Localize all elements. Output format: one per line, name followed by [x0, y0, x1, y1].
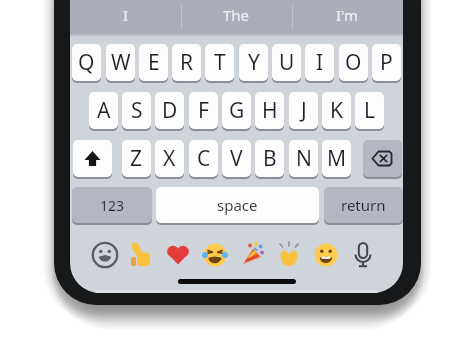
- button[interactable]: D: [155, 92, 184, 129]
- button[interactable]: J: [289, 92, 318, 129]
- staticText: H: [262, 96, 278, 125]
- staticText: W: [111, 48, 131, 77]
- button[interactable]: W: [106, 44, 135, 81]
- button[interactable]: P: [372, 44, 401, 81]
- button[interactable]: F: [189, 92, 218, 129]
- staticText: S: [131, 96, 143, 125]
- staticText: D: [162, 96, 178, 125]
- button[interactable]: V: [222, 140, 251, 177]
- button[interactable]: C: [189, 140, 218, 177]
- button[interactable]: S: [122, 92, 151, 129]
- staticText: V: [230, 144, 243, 173]
- staticText: E: [148, 48, 160, 77]
- button[interactable]: return: [324, 187, 403, 223]
- button[interactable]: O: [339, 44, 368, 81]
- staticText: G: [229, 96, 245, 125]
- staticText: M: [327, 144, 347, 173]
- staticText: R: [180, 48, 194, 77]
- button[interactable]: H: [255, 92, 284, 129]
- button[interactable]: [90, 240, 120, 270]
- staticText: B: [263, 144, 277, 173]
- staticText: I: [123, 5, 129, 25]
- button[interactable]: Y: [239, 44, 268, 81]
- button[interactable]: [237, 240, 267, 270]
- staticText: I: [316, 48, 324, 77]
- staticText: Q: [78, 48, 95, 77]
- staticText: 123: [100, 196, 125, 215]
- button[interactable]: [163, 240, 193, 270]
- staticText: N: [296, 144, 312, 173]
- button[interactable]: L: [355, 92, 384, 129]
- button[interactable]: I: [305, 44, 334, 81]
- button[interactable]: [311, 240, 341, 270]
- staticText: return: [341, 195, 386, 215]
- staticText: T: [214, 48, 226, 77]
- button[interactable]: U: [272, 44, 301, 81]
- button[interactable]: Q: [72, 44, 101, 81]
- button[interactable]: X: [155, 140, 184, 177]
- button[interactable]: [363, 140, 402, 177]
- button[interactable]: The: [181, 0, 292, 30]
- staticText: K: [330, 96, 343, 125]
- button[interactable]: K: [322, 92, 351, 129]
- button[interactable]: [348, 240, 378, 270]
- staticText: A: [97, 96, 111, 125]
- staticText: Y: [248, 48, 260, 77]
- button[interactable]: Z: [122, 140, 151, 177]
- button[interactable]: A: [89, 92, 118, 129]
- button[interactable]: [73, 140, 112, 177]
- staticText: X: [163, 144, 176, 173]
- button[interactable]: B: [255, 140, 284, 177]
- button[interactable]: I: [70, 0, 181, 30]
- button[interactable]: [274, 240, 304, 270]
- staticText: C: [197, 144, 211, 173]
- staticText: L: [364, 96, 376, 125]
- staticText: O: [345, 48, 362, 77]
- staticText: I'm: [336, 5, 359, 25]
- staticText: The: [223, 5, 250, 25]
- button[interactable]: 123: [72, 187, 152, 223]
- button[interactable]: R: [172, 44, 201, 81]
- staticText: J: [301, 96, 307, 125]
- button[interactable]: I'm: [292, 0, 403, 30]
- button[interactable]: space: [156, 187, 319, 223]
- button[interactable]: [126, 240, 156, 270]
- button[interactable]: [200, 240, 230, 270]
- button[interactable]: M: [322, 140, 351, 177]
- staticText: F: [198, 96, 209, 125]
- staticText: space: [217, 195, 258, 215]
- staticText: P: [380, 48, 393, 77]
- button[interactable]: T: [205, 44, 234, 81]
- staticText: Z: [130, 144, 143, 173]
- button[interactable]: N: [289, 140, 318, 177]
- staticText: U: [279, 48, 295, 77]
- button[interactable]: E: [139, 44, 168, 81]
- button[interactable]: G: [222, 92, 251, 129]
